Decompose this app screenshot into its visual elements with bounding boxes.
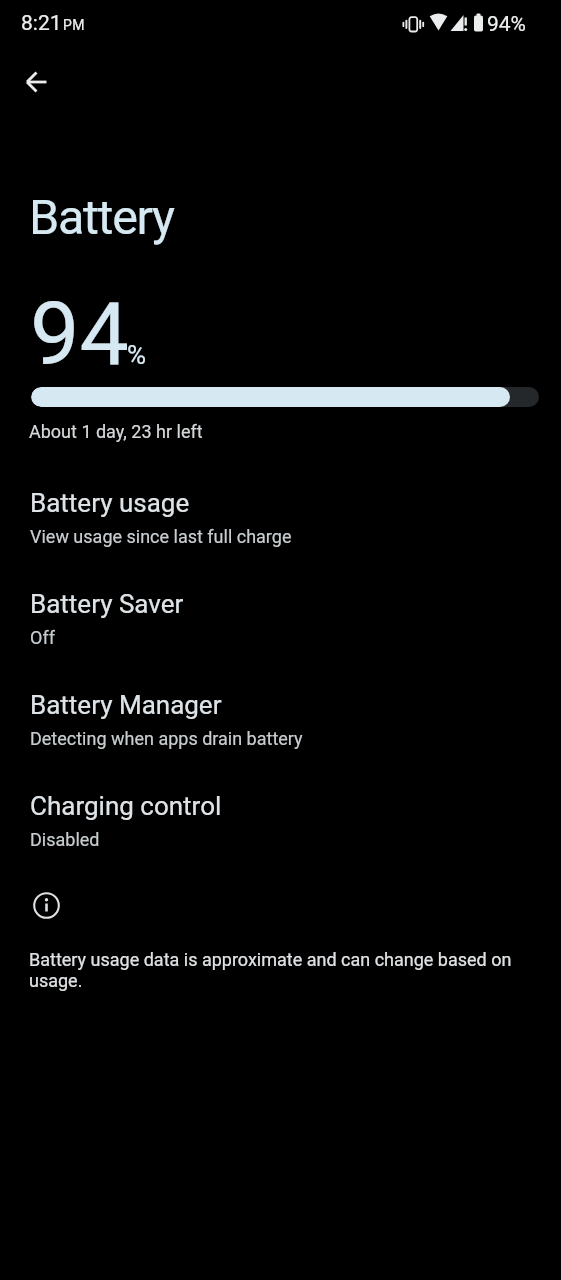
staticText: Battery Saver — [30, 589, 184, 619]
button[interactable]: Battery Manager — [0, 668, 561, 769]
staticText: PM — [63, 17, 86, 33]
staticText: Battery usage — [30, 488, 190, 518]
staticText: Battery Manager — [30, 690, 222, 720]
staticText: usage. — [29, 970, 83, 991]
button[interactable]: Charging control — [0, 769, 561, 870]
staticText: Off — [30, 627, 55, 648]
staticText: 94% — [487, 12, 526, 37]
button[interactable] — [15, 60, 59, 104]
staticText: Disabled — [30, 829, 100, 850]
staticText: Battery — [29, 189, 174, 246]
button[interactable]: Battery usage — [0, 466, 561, 567]
staticText: Battery usage data is approximate and ca… — [29, 949, 512, 970]
staticText: % — [127, 340, 147, 370]
staticText: 94 — [30, 282, 129, 385]
staticText: 8:21 — [21, 11, 62, 36]
staticText: Charging control — [30, 791, 222, 821]
staticText: View usage since last full charge — [30, 526, 292, 547]
staticText: Detecting when apps drain battery — [30, 728, 303, 749]
button[interactable]: Battery Saver — [0, 567, 561, 668]
staticText: About 1 day, 23 hr left — [29, 421, 203, 442]
